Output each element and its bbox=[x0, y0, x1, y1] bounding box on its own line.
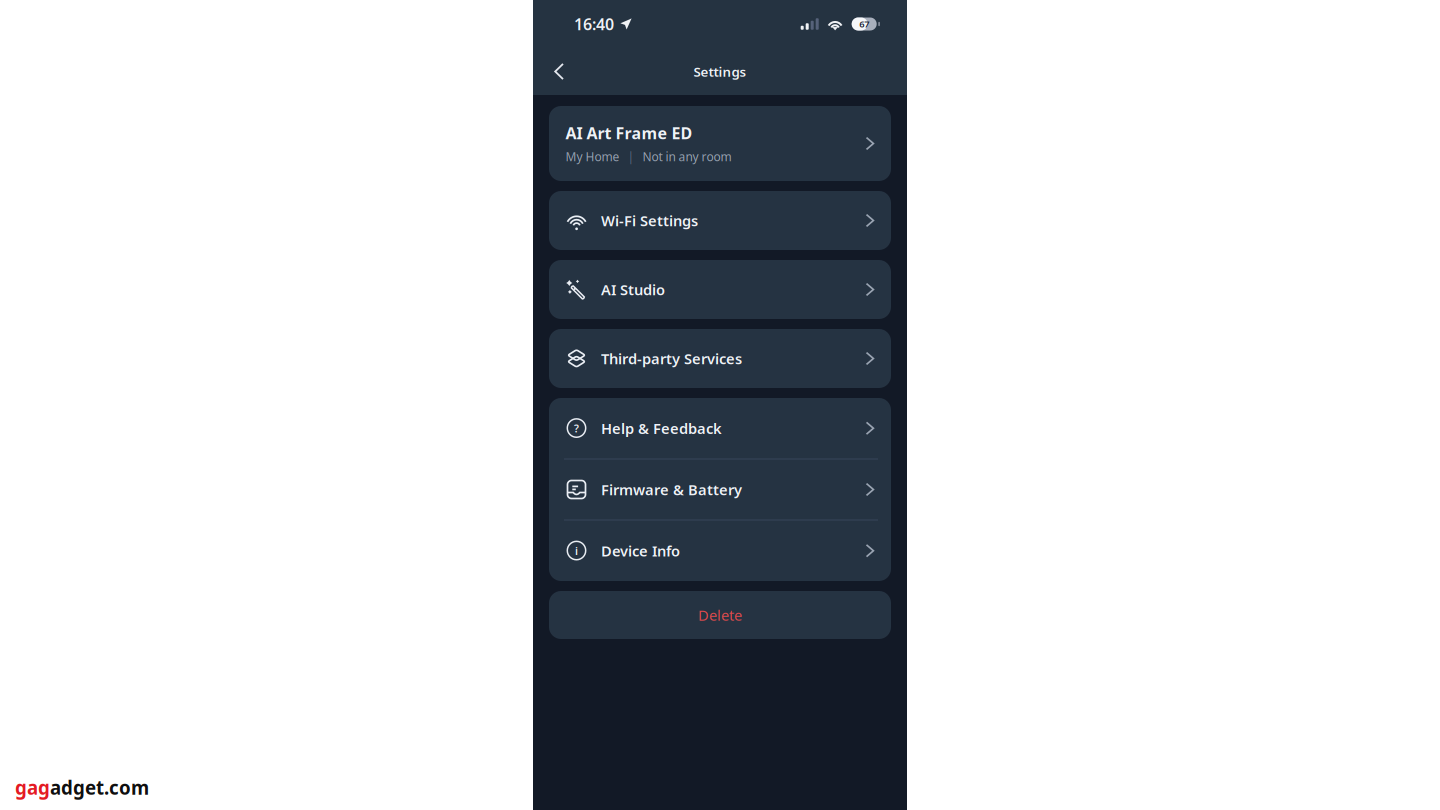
staticText: gag bbox=[15, 775, 50, 800]
button[interactable]: AI Studio bbox=[549, 260, 891, 319]
button[interactable]: i bbox=[549, 520, 891, 581]
staticText: AI Art Frame ED bbox=[565, 122, 692, 144]
button[interactable]: Third-party Services bbox=[549, 329, 891, 388]
button[interactable]: AI Art Frame ED bbox=[549, 106, 891, 181]
button[interactable]: ? bbox=[549, 398, 891, 458]
staticText: 16:40 bbox=[574, 13, 614, 35]
staticText: | bbox=[627, 149, 634, 165]
staticText: i bbox=[575, 544, 578, 558]
staticText: adget.com bbox=[50, 775, 149, 800]
staticText: My Home bbox=[565, 149, 619, 165]
button[interactable]: Firmware & Battery bbox=[549, 459, 891, 519]
staticText: Firmware & Battery bbox=[601, 480, 742, 499]
button[interactable]: Wi-Fi Settings bbox=[549, 191, 891, 250]
staticText: Third-party Services bbox=[601, 349, 742, 368]
staticText: Help & Feedback bbox=[601, 418, 722, 438]
staticText: Delete bbox=[698, 605, 742, 625]
staticText: AI Studio bbox=[601, 280, 665, 299]
button[interactable]: Delete bbox=[549, 591, 891, 639]
staticText: Not in any room bbox=[642, 149, 731, 165]
button[interactable]: Back bbox=[543, 51, 575, 92]
staticText: Wi-Fi Settings bbox=[601, 211, 698, 230]
staticText: Device Info bbox=[601, 541, 680, 560]
staticText: 67 bbox=[859, 18, 869, 30]
staticText: Settings bbox=[693, 63, 746, 80]
staticText: ? bbox=[574, 421, 579, 435]
